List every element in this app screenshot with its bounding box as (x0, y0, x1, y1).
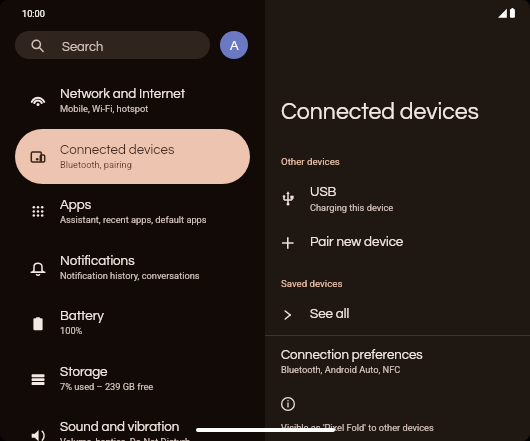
staticText: A (230, 39, 239, 52)
staticText: Battery (60, 309, 104, 323)
staticText: USB (310, 185, 337, 199)
staticText: Connection preferences (281, 348, 423, 362)
staticText: Bluetooth, pairing (60, 159, 132, 170)
staticText: 7% used – 239 GB free (60, 381, 154, 392)
staticText: Apps (60, 198, 92, 212)
staticText: Storage (60, 365, 108, 379)
button[interactable]: Pair new device (265, 225, 530, 263)
button[interactable]: Storage (15, 351, 250, 406)
staticText: Sound and vibration (60, 420, 180, 434)
staticText: Notifications (60, 254, 135, 268)
staticText: Mobile, Wi-Fi, hotspot (60, 103, 149, 114)
staticText: Pair new device (310, 235, 404, 249)
button[interactable]: Connection preferences (265, 343, 530, 381)
button[interactable]: See all (265, 297, 530, 335)
staticText: Saved devices (281, 278, 343, 289)
staticText: Search (62, 40, 104, 53)
button[interactable]: Connected devices (15, 129, 250, 184)
staticText: Other devices (281, 156, 340, 167)
staticText: Visible as 'Pixel Fold' to other devices (281, 422, 434, 433)
button[interactable]: Search (15, 31, 210, 59)
staticText: Charging this device (310, 202, 394, 213)
staticText: Notification history, conversations (60, 270, 200, 281)
button[interactable]: Sound and vibration (15, 406, 250, 441)
staticText: Connected devices (60, 143, 175, 157)
staticText: Assistant, recent apps, default apps (60, 214, 207, 225)
staticText: 100% (60, 325, 83, 336)
button[interactable]: A (220, 31, 248, 59)
button[interactable]: Network and Internet (15, 73, 250, 128)
button[interactable]: Notifications (15, 240, 250, 295)
staticText: See all (310, 307, 350, 321)
button[interactable]: Battery (15, 295, 250, 350)
staticText: Network and Internet (60, 87, 186, 101)
staticText: Volume, haptics, Do Not Disturb (60, 436, 191, 441)
button[interactable]: Apps (15, 184, 250, 239)
staticText: Connected devices (281, 100, 479, 124)
staticText: Bluetooth, Android Auto, NFC (281, 364, 401, 375)
button[interactable]: USB (265, 180, 530, 224)
staticText: 10:00 (22, 8, 45, 19)
